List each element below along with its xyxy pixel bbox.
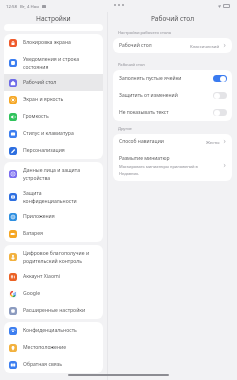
staticText: Блокировка экрана	[23, 39, 71, 46]
staticText: Рабочий стол	[151, 14, 195, 23]
staticText: Данные лица и защита устройства	[23, 167, 80, 181]
staticText: Приложения	[23, 213, 55, 220]
staticText: Аккаунт Xiaomi	[23, 273, 61, 280]
staticText: Размытие миниатюр	[119, 155, 170, 162]
button[interactable]: Блокировка экрана	[4, 34, 103, 51]
staticText: Рабочий стол	[119, 42, 152, 49]
button[interactable]: Экран и яркость	[4, 91, 103, 108]
button[interactable]: Размытие миниатюр	[113, 149, 232, 181]
button[interactable]: Google	[4, 285, 103, 302]
button[interactable]: Расширенные настройки	[4, 302, 103, 319]
staticText: Батарея	[23, 230, 43, 237]
staticText: Другое	[118, 126, 132, 132]
button[interactable]: Данные лица и защита устройства	[4, 162, 103, 185]
staticText: Конфиденциальность	[23, 327, 77, 334]
button[interactable]: Приложения	[4, 208, 103, 225]
staticText: Расширенные настройки	[23, 307, 86, 314]
button[interactable]: Батарея	[4, 225, 103, 242]
button[interactable]: Рабочий стол	[4, 74, 103, 91]
staticText: Настройки	[36, 14, 71, 23]
button[interactable]: Аккаунт Xiaomi	[4, 268, 103, 285]
button[interactable]: Местоположение	[4, 339, 103, 356]
button[interactable]: Уведомления и строка состояния	[4, 51, 103, 74]
staticText: Защитить от изменений	[119, 92, 178, 99]
button[interactable]: Off	[213, 109, 227, 116]
button[interactable]: Ещё	[114, 2, 126, 8]
staticText: Громкость	[23, 113, 49, 120]
staticText: Рабочий стол	[23, 79, 57, 86]
button[interactable]: Обратная связь	[4, 356, 103, 373]
button[interactable]: Конфиденциальность	[4, 322, 103, 339]
button[interactable]: Off	[213, 92, 227, 99]
staticText: Защита конфиденциальности	[23, 190, 77, 204]
staticText: Google	[23, 290, 41, 297]
button[interactable]: On	[213, 75, 227, 82]
staticText: Уведомления и строка состояния	[23, 56, 80, 70]
staticText: Экран и яркость	[23, 96, 64, 103]
button[interactable]: Защита конфиденциальности	[4, 185, 103, 208]
staticText: Стилус и клавиатура	[23, 130, 74, 137]
staticText: Вт, 4 Ноя	[20, 3, 39, 9]
button[interactable]: Громкость	[4, 108, 103, 125]
staticText: Заполнять пустые ячейки	[119, 75, 182, 82]
button[interactable]: Не показывать текст	[113, 104, 232, 121]
staticText: Маскировать миниатюры приложений в Недав…	[119, 164, 198, 176]
button[interactable]: Персонализация	[4, 142, 103, 159]
button[interactable]: Защитить от изменений	[113, 87, 232, 104]
staticText: Классический	[190, 43, 220, 49]
staticText: Рабочий стол	[118, 62, 145, 68]
staticText: Жесты	[206, 139, 220, 145]
staticText: Не показывать текст	[119, 109, 169, 116]
button[interactable]: Стилус и клавиатура	[4, 125, 103, 142]
other: Signal	[218, 5, 221, 8]
button[interactable]: Заполнять пустые ячейки	[113, 70, 232, 87]
button[interactable]: Цифровое благополучие и родительский кон…	[4, 245, 103, 268]
staticText: Персонализация	[23, 147, 65, 154]
staticText: Цифровое благополучие и родительский кон…	[23, 250, 90, 264]
button[interactable]: Рабочий стол	[113, 38, 232, 53]
staticText: Способ навигации	[119, 138, 164, 145]
staticText: Настройки рабочего стола	[118, 30, 171, 36]
staticText: Обратная связь	[23, 361, 62, 368]
staticText: Местоположение	[23, 344, 66, 351]
staticText: 12:58	[6, 3, 17, 9]
button[interactable]: Способ навигации	[113, 134, 232, 149]
